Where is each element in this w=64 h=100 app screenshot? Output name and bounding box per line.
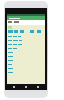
button[interactable]: Navigation — [11, 84, 17, 90]
button[interactable]: Navigation — [23, 84, 29, 90]
button[interactable] — [7, 16, 45, 20]
button[interactable]: Navigation — [35, 84, 41, 90]
